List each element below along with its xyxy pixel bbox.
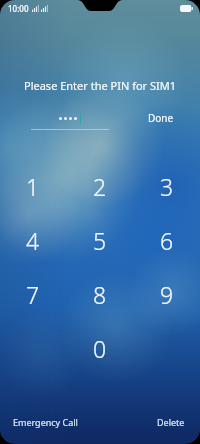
staticText: 1 [26,171,40,202]
staticText: 6 [160,225,174,256]
staticText: 0 [93,333,107,364]
staticText: 5 [93,225,107,256]
staticText: 7 [26,279,40,310]
staticText: Delete [157,416,185,428]
button[interactable]: 0 [66,321,133,375]
staticText: 2 [93,171,107,202]
button[interactable]: 2 [66,159,133,213]
button[interactable]: Emergency Call [9,413,82,431]
button[interactable]: Done [142,108,180,128]
button[interactable]: 4 [0,213,66,267]
staticText: 4 [26,225,40,256]
staticText: 3 [160,171,174,202]
button[interactable]: 7 [0,267,66,321]
staticText: Done [148,111,174,125]
button[interactable] [31,106,109,130]
staticText: 9 [160,279,174,310]
button[interactable]: Delete [153,413,189,431]
staticText: 8 [93,279,107,310]
staticText: 10:00 [8,3,29,14]
button[interactable]: 9 [133,267,200,321]
staticText: Emergency Call [13,416,78,428]
button[interactable]: 5 [66,213,133,267]
button[interactable]: 6 [133,213,200,267]
button[interactable]: 8 [66,267,133,321]
button[interactable]: 3 [133,159,200,213]
button[interactable]: 1 [0,159,66,213]
staticText: Please Enter the PIN for SIM1 [0,78,200,93]
